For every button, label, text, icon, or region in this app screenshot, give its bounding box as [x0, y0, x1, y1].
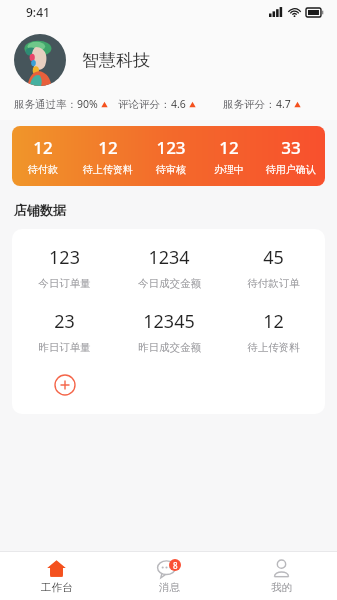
staticText: 12345	[143, 309, 195, 334]
button[interactable]: 23	[12, 309, 117, 354]
staticText: 我的	[271, 581, 292, 594]
button[interactable]: 12	[200, 126, 257, 186]
button[interactable]: 123	[12, 245, 117, 290]
staticText: 9:41	[26, 4, 50, 20]
staticText: 待上传资料	[83, 163, 133, 176]
staticText: 12	[98, 136, 118, 159]
button[interactable]: 工作台	[0, 552, 113, 600]
staticText: 33	[281, 136, 301, 159]
button[interactable]: 1234	[117, 245, 221, 290]
staticText: 12	[219, 136, 239, 159]
staticText: 智慧科技	[82, 50, 150, 71]
staticText: 消息	[159, 581, 180, 594]
staticText: 4.7	[276, 97, 291, 111]
staticText: 90%	[77, 97, 98, 111]
button[interactable]: 12345	[117, 309, 221, 354]
staticText: 1234	[148, 245, 190, 270]
button[interactable]: 12	[74, 126, 141, 186]
staticText: 今日订单量	[38, 277, 91, 290]
staticText: 待审核	[156, 163, 186, 176]
staticText: 昨日订单量	[38, 341, 91, 354]
button[interactable]: 12	[221, 309, 325, 354]
staticText: 待付款	[28, 163, 58, 176]
staticText: 8	[173, 560, 178, 571]
button[interactable]: 45	[221, 245, 325, 290]
staticText: 4.6	[171, 97, 186, 111]
staticText: 45	[263, 245, 284, 270]
staticText: 服务通过率：	[14, 98, 77, 111]
button[interactable]: 12	[12, 126, 74, 186]
button[interactable]: 8	[113, 552, 225, 600]
staticText: 待付款订单	[247, 277, 300, 290]
button[interactable]: 123	[141, 126, 200, 186]
button[interactable]: 33	[257, 126, 325, 186]
staticText: 123	[49, 245, 80, 270]
staticText: 待用户确认	[266, 163, 316, 176]
staticText: 12	[33, 136, 53, 159]
staticText: 评论评分：	[118, 98, 171, 111]
staticText: 今日成交金额	[138, 277, 201, 290]
staticText: 123	[156, 136, 186, 159]
staticText: 店铺数据	[14, 202, 66, 218]
button[interactable]: Add data item	[54, 374, 76, 396]
staticText: 昨日成交金额	[138, 341, 201, 354]
staticText: 23	[54, 309, 75, 334]
staticText: 待上传资料	[247, 341, 300, 354]
staticText: 12	[263, 309, 284, 334]
button[interactable]: 我的	[225, 552, 337, 600]
button[interactable]: Profile avatar	[14, 34, 66, 86]
staticText: 工作台	[41, 581, 73, 594]
staticText: 服务评分：	[223, 98, 276, 111]
staticText: 办理中	[214, 163, 244, 176]
